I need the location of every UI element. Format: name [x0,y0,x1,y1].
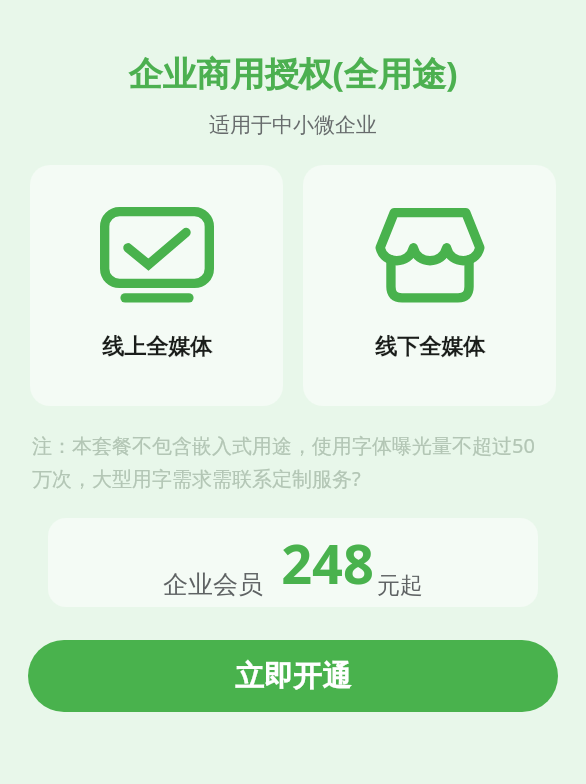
staticText: 企业会员 [163,569,263,600]
staticText: 线下全媒体 [375,333,485,361]
staticText: 元起 [377,571,423,600]
button[interactable]: 线上全媒体 [30,165,283,406]
staticText: 企业商用授权(全用途) [128,50,458,96]
button[interactable]: 线下全媒体 [303,165,556,406]
staticText: 248 [281,526,374,600]
staticText: 线上全媒体 [102,333,212,361]
staticText: 注：本套餐不包含嵌入式用途，使用字体曝光量不超过50万次，大型用字需求需联系定制… [32,432,554,492]
other: 线下全媒体 [375,207,485,303]
button[interactable]: 立即开通 [28,640,558,712]
other: 线上全媒体 [100,207,214,303]
staticText: 适用于中小微企业 [209,112,377,138]
staticText: 立即开通 [235,658,351,695]
